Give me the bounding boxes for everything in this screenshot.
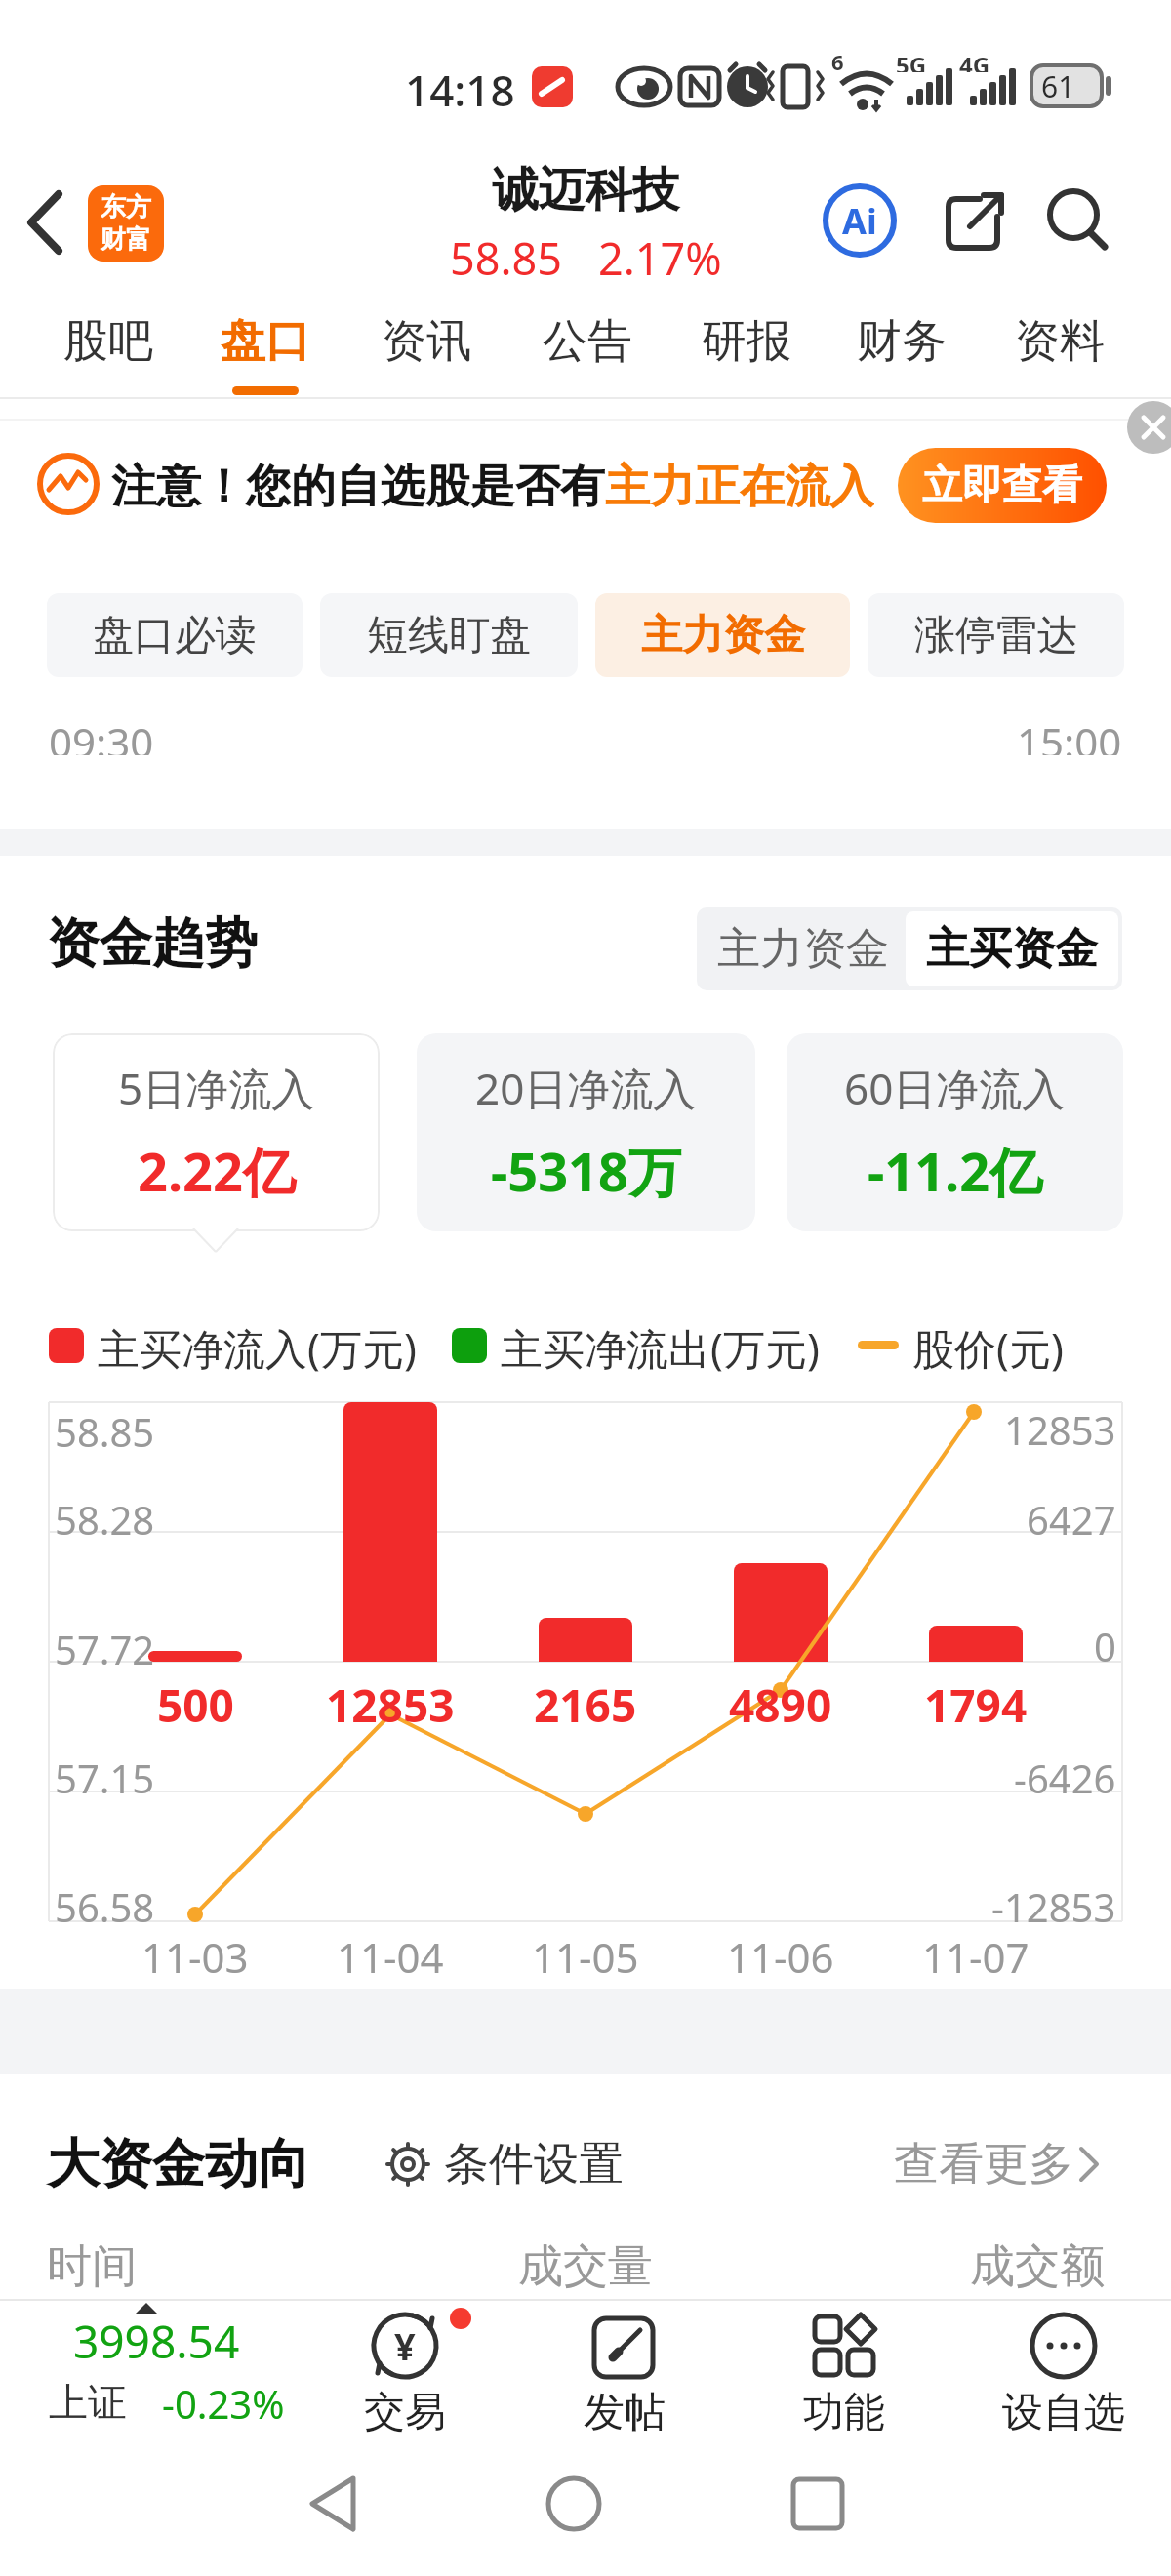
staticText: 5G <box>896 49 927 72</box>
staticText: 成交量 <box>518 2238 653 2291</box>
staticText: -12853 <box>991 1880 1116 1925</box>
button[interactable] <box>790 2476 845 2531</box>
staticText: 11-05 <box>532 1929 639 1976</box>
staticText: 涨停雷达 <box>914 610 1078 662</box>
button[interactable]: 设自选 <box>976 2305 1151 2443</box>
staticText: 4890 <box>729 1674 832 1727</box>
button[interactable] <box>546 2476 601 2531</box>
button[interactable]: 资讯 <box>348 302 505 381</box>
button[interactable]: 发帖 <box>551 2305 698 2443</box>
staticText: 发帖 <box>584 2387 666 2438</box>
staticText: 11-07 <box>922 1929 1030 1976</box>
button[interactable]: 立即查看 <box>898 448 1107 523</box>
staticText: 主买资金 <box>926 922 1098 976</box>
button[interactable]: 20日净流入 <box>417 1033 755 1231</box>
button[interactable]: 主力资金 <box>595 593 850 677</box>
staticText: 主买净流入(万元) <box>98 1319 417 1372</box>
button[interactable]: 公告 <box>509 302 666 381</box>
button[interactable]: ¥ <box>332 2305 478 2443</box>
staticText: 资讯 <box>382 313 471 370</box>
button[interactable]: 资料 <box>982 302 1138 381</box>
staticText: 主力资金 <box>717 922 889 976</box>
button[interactable]: 涨停雷达 <box>868 593 1124 677</box>
button[interactable]: 盘口必读 <box>47 593 303 677</box>
button[interactable] <box>386 2143 429 2186</box>
button[interactable]: 研报 <box>668 302 825 381</box>
staticText: 58.28 <box>55 1493 155 1538</box>
staticText: 研报 <box>702 313 791 370</box>
staticText: 56.58 <box>55 1880 155 1925</box>
staticText: 0 <box>1094 1620 1116 1665</box>
staticText: 5日净流入 <box>118 1059 315 1117</box>
staticText: 4G <box>959 49 990 72</box>
staticText: 注意！您的自选股是否有 <box>111 459 605 511</box>
staticText: 盘口 <box>221 313 310 370</box>
staticText: Ai <box>842 197 877 245</box>
staticText: 12853 <box>1004 1403 1116 1448</box>
staticText: 12853 <box>326 1674 455 1727</box>
staticText: 大资金动向 <box>47 2131 310 2197</box>
staticText: 财务 <box>857 313 947 370</box>
staticText: 3998.54 <box>73 2311 240 2361</box>
staticText: 58.85 <box>55 1405 155 1450</box>
staticText: 股价(元) <box>912 1319 1064 1372</box>
button[interactable]: 东方 <box>88 185 164 262</box>
staticText: -0.23% <box>162 2377 285 2428</box>
staticText: -5318万 <box>491 1135 681 1207</box>
staticText: 交易 <box>364 2387 446 2438</box>
staticText: 功能 <box>803 2387 885 2438</box>
button[interactable]: 5日净流入 <box>53 1033 380 1231</box>
staticText: 11-06 <box>727 1929 834 1976</box>
staticText: 资金趋势 <box>47 910 258 977</box>
button[interactable] <box>20 2301 312 2439</box>
staticText: 61 <box>1041 66 1075 106</box>
staticText: 1794 <box>924 1674 1028 1727</box>
button[interactable] <box>23 190 66 255</box>
staticText: 6427 <box>1027 1493 1116 1538</box>
button[interactable]: 短线盯盘 <box>320 593 578 677</box>
button[interactable]: 查看更多 <box>894 2135 1099 2194</box>
staticText: 58.85 <box>450 228 563 281</box>
staticText: 诚迈科技 <box>492 161 679 220</box>
staticText: 立即查看 <box>922 461 1082 511</box>
button[interactable] <box>1044 187 1110 254</box>
staticText: -6426 <box>1014 1751 1116 1796</box>
staticText: 成交额 <box>970 2238 1105 2291</box>
staticText: 条件设置 <box>444 2136 624 2193</box>
button[interactable] <box>308 2476 359 2531</box>
staticText: 上证 <box>49 2378 127 2427</box>
staticText: 09:30 <box>49 714 154 755</box>
staticText: 财富 <box>101 223 151 256</box>
staticText: 11-03 <box>141 1929 249 1976</box>
button[interactable]: 盘口 <box>187 302 343 381</box>
staticText: 短线盯盘 <box>367 610 531 662</box>
staticText: 设自选 <box>1002 2387 1125 2438</box>
button[interactable]: 主力资金 <box>697 907 909 990</box>
staticText: 57.72 <box>55 1623 155 1668</box>
staticText: 时间 <box>47 2238 137 2291</box>
staticText: 60日净流入 <box>844 1059 1066 1117</box>
button[interactable]: 财务 <box>824 302 980 381</box>
button[interactable] <box>1120 402 1171 453</box>
staticText: ¥ <box>394 2320 416 2371</box>
button[interactable]: 60日净流入 <box>787 1033 1123 1231</box>
staticText: 资料 <box>1015 313 1105 370</box>
staticText: 股吧 <box>63 313 153 370</box>
button[interactable] <box>945 191 1005 252</box>
staticText: 查看更多 <box>894 2136 1073 2193</box>
button[interactable]: Ai <box>823 183 897 258</box>
button[interactable]: 主买资金 <box>906 911 1118 986</box>
button[interactable]: 股吧 <box>30 302 186 381</box>
staticText: 2.22亿 <box>138 1135 296 1207</box>
staticText: 东方 <box>101 191 151 223</box>
staticText: 57.15 <box>55 1751 155 1796</box>
staticText: -11.2亿 <box>868 1135 1043 1207</box>
staticText: 14:18 <box>405 60 515 109</box>
staticText: 11-04 <box>337 1929 444 1976</box>
staticText: 盘口必读 <box>93 610 257 662</box>
button[interactable]: 功能 <box>771 2305 917 2443</box>
staticText: 20日净流入 <box>475 1059 697 1117</box>
staticText: 主买净流出(万元) <box>501 1319 820 1372</box>
staticText: 500 <box>157 1674 234 1727</box>
staticText: 6 <box>831 47 844 70</box>
